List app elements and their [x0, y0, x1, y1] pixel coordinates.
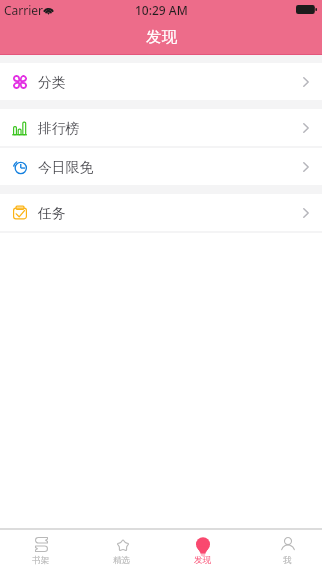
staticText: 书架: [32, 555, 50, 566]
staticText: 发现: [146, 27, 177, 46]
button[interactable]: Featured: [80, 530, 160, 572]
staticText: 今日限免: [38, 159, 94, 176]
staticText: 精选: [113, 555, 131, 566]
button[interactable]: Me: [241, 530, 322, 572]
button[interactable]: 分类: [0, 63, 322, 100]
button[interactable]: 今日限免: [0, 148, 322, 185]
staticText: 任务: [38, 205, 66, 222]
staticText: 我: [283, 555, 292, 566]
staticText: 发现: [194, 555, 212, 566]
button[interactable]: Discover: [160, 530, 241, 572]
staticText: Carrier: [4, 2, 44, 18]
button[interactable]: Bookshelf: [0, 530, 80, 572]
staticText: 分类: [38, 74, 66, 91]
staticText: 排行榜: [38, 120, 80, 137]
button[interactable]: 排行榜: [0, 109, 322, 146]
button[interactable]: 任务: [0, 194, 322, 231]
staticText: 10:29 AM: [135, 2, 188, 18]
